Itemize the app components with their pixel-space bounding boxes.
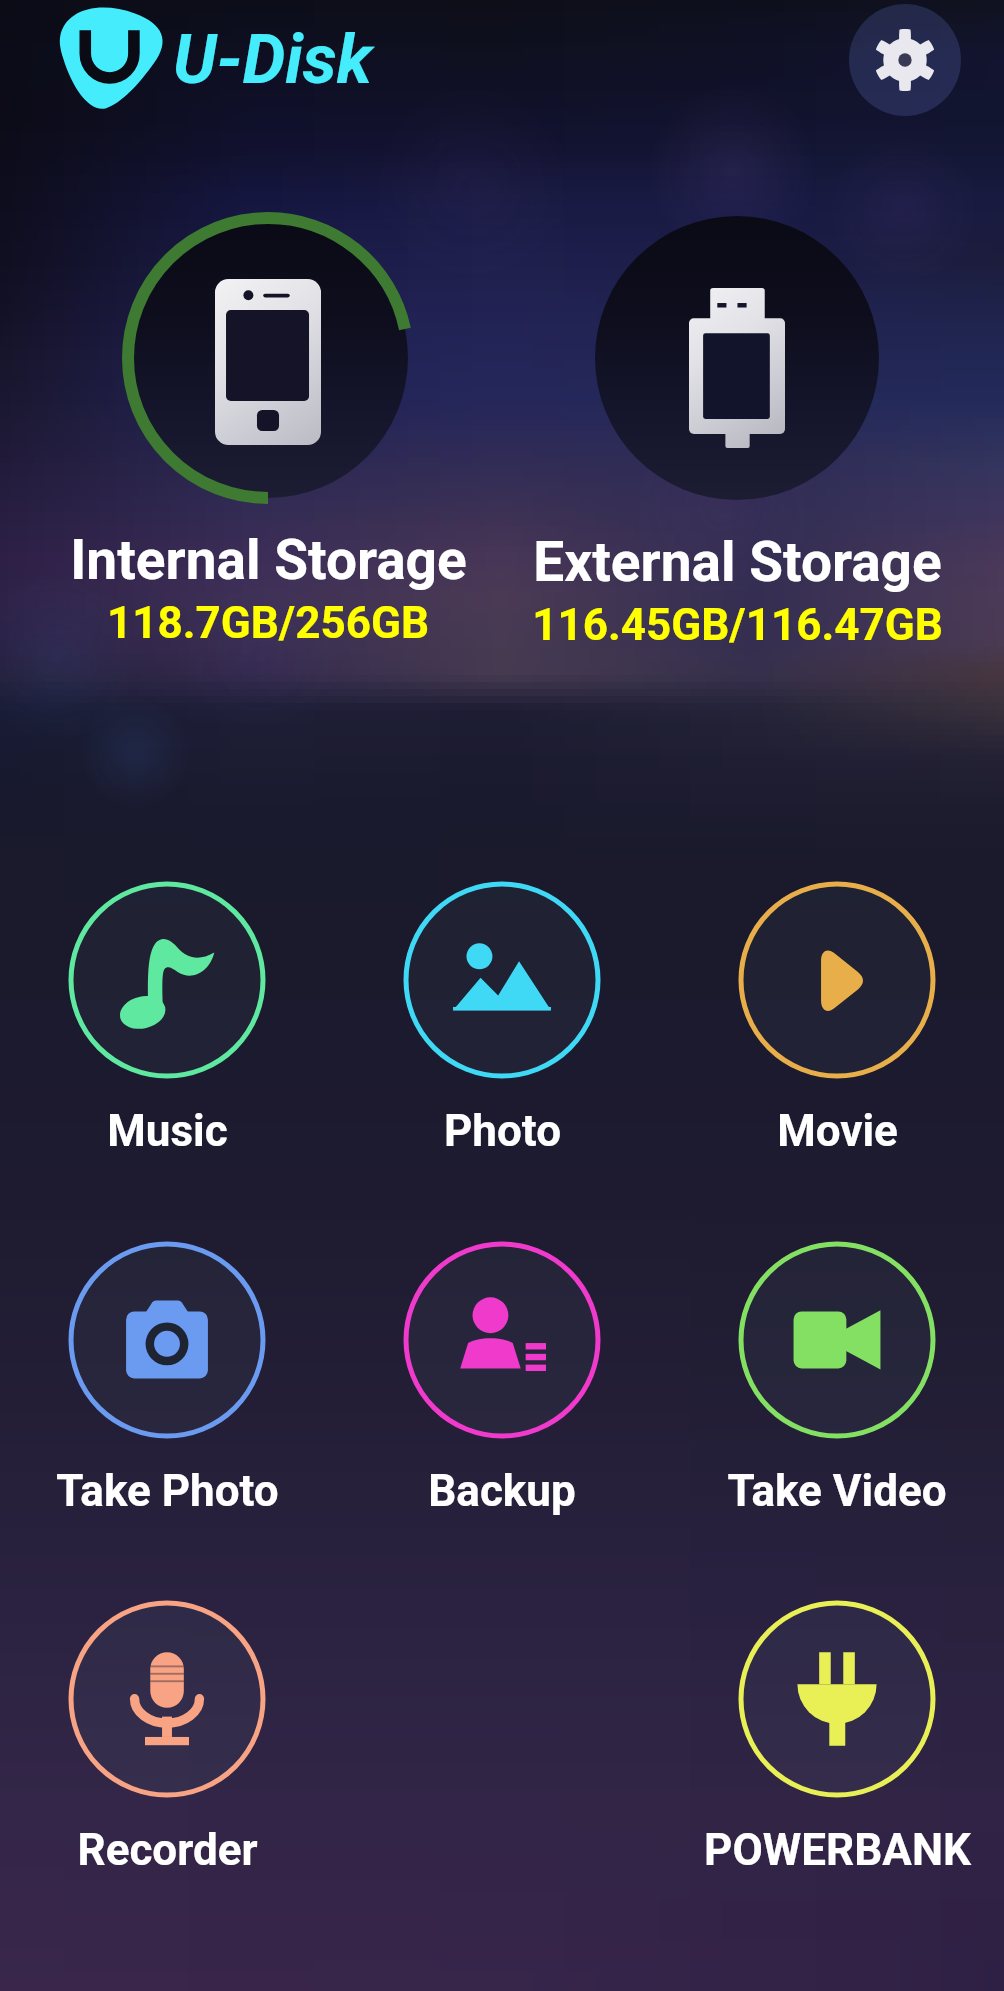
button[interactable]: Internal Storage [18, 202, 518, 812]
staticText: 118.7GB/256GB [107, 597, 429, 649]
button[interactable]: POWERBANK [670, 1599, 1004, 1859]
staticText: External Storage [533, 530, 942, 594]
staticText: Internal Storage [70, 528, 467, 592]
staticText: Photo [444, 1105, 561, 1157]
button[interactable]: Music [0, 880, 334, 1140]
staticText: POWERBANK [704, 1824, 971, 1876]
staticText: Music [107, 1105, 228, 1157]
staticText: Movie [777, 1105, 898, 1157]
button[interactable]: Movie [670, 880, 1004, 1140]
button[interactable]: External Storage [487, 200, 987, 814]
staticText: 116.45GB/116.47GB [532, 599, 943, 651]
button[interactable]: Photo [335, 880, 669, 1140]
button[interactable]: Recorder [0, 1599, 334, 1859]
staticText: Take Photo [56, 1465, 279, 1517]
button[interactable]: Settings [849, 4, 961, 116]
button[interactable]: Take Photo [0, 1240, 334, 1500]
staticText: Take Video [727, 1465, 947, 1517]
staticText: Backup [428, 1465, 576, 1517]
staticText: U-Disk [173, 20, 372, 100]
button[interactable]: Backup [335, 1240, 669, 1500]
staticText: Recorder [77, 1824, 258, 1876]
button[interactable]: Take Video [670, 1240, 1004, 1500]
